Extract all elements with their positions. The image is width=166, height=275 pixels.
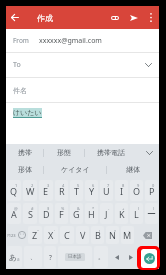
staticText: Z	[32, 229, 38, 241]
button[interactable]: I	[115, 180, 128, 201]
staticText: #	[31, 206, 34, 211]
button[interactable]: Y	[85, 180, 98, 201]
button[interactable]: E	[39, 180, 53, 201]
staticText: $	[47, 206, 50, 211]
button[interactable]: 携帯電話	[85, 144, 137, 161]
button[interactable]: 携帯	[6, 144, 43, 161]
button[interactable]: K	[115, 203, 128, 224]
staticText: From	[13, 36, 29, 45]
button[interactable]: B	[91, 226, 104, 244]
button[interactable]: ケイタイ	[44, 161, 106, 178]
staticText: xxxxxx@gmail.com	[39, 36, 102, 46]
staticText: P	[149, 185, 155, 197]
staticText: Y	[89, 185, 95, 197]
staticText: ?	[49, 253, 52, 262]
staticText: 携帯	[18, 148, 32, 157]
button[interactable]: 。	[94, 246, 108, 268]
staticText: 6	[92, 183, 95, 188]
button[interactable]: Cursor right	[125, 246, 137, 268]
staticText: ー	[147, 208, 156, 219]
staticText: 5	[77, 183, 80, 188]
button[interactable]: Z	[28, 226, 42, 244]
staticText: 1	[15, 183, 18, 188]
button[interactable]: W	[23, 180, 37, 201]
button[interactable]: ー	[145, 203, 158, 224]
button[interactable]: けいたい	[6, 103, 159, 125]
button[interactable]: X	[44, 226, 58, 244]
button[interactable]: P	[145, 180, 158, 201]
button[interactable]: Emoji	[18, 226, 26, 244]
button[interactable]: 件名	[6, 78, 159, 102]
staticText: -	[108, 206, 110, 211]
staticText: W	[26, 185, 35, 197]
staticText: 8	[122, 183, 125, 188]
staticText: T	[74, 185, 80, 197]
staticText: D	[43, 208, 50, 220]
staticText: ケイタイ	[61, 165, 90, 174]
staticText: U	[103, 185, 110, 197]
button[interactable]: T	[70, 180, 83, 201]
button[interactable]: 日本語	[58, 246, 92, 268]
staticText: けいたい	[13, 108, 42, 117]
button[interactable]: 形態	[44, 144, 84, 161]
button[interactable]: 形体	[6, 161, 43, 178]
button[interactable]: M	[121, 226, 134, 244]
button[interactable]: Attach file	[106, 6, 124, 29]
staticText: 9	[137, 183, 140, 188]
staticText: ~	[128, 229, 131, 234]
button[interactable]: N	[106, 226, 119, 244]
button[interactable]: Back	[6, 6, 24, 29]
button[interactable]: 継体	[107, 161, 159, 178]
button[interactable]: H	[85, 203, 98, 224]
staticText: 4	[62, 183, 65, 188]
staticText: 7	[107, 183, 110, 188]
button[interactable]: ?	[44, 246, 56, 268]
button[interactable]: S	[23, 203, 37, 224]
button[interactable]: Send	[124, 6, 143, 29]
staticText: (	[138, 206, 140, 211]
staticText: @	[14, 206, 18, 211]
staticText: G	[73, 208, 80, 220]
staticText: 。	[98, 253, 105, 261]
staticText: R	[59, 185, 65, 197]
staticText: O	[133, 185, 141, 197]
button[interactable]: More suggestions	[139, 144, 159, 161]
staticText: a	[17, 256, 20, 262]
button[interactable]: ?123	[7, 226, 16, 244]
staticText: 、	[30, 253, 37, 261]
button[interactable]: To	[6, 53, 159, 77]
button[interactable]: F	[55, 203, 68, 224]
staticText: C	[64, 229, 70, 241]
staticText: To	[13, 60, 21, 70]
button[interactable]: J	[100, 203, 113, 224]
staticText: J	[105, 208, 108, 220]
button[interactable]: L	[130, 203, 143, 224]
staticText: H	[88, 208, 95, 220]
staticText: ?123	[7, 233, 16, 238]
button[interactable]: Q	[7, 180, 21, 201]
staticText: N	[109, 229, 116, 241]
button[interactable]: U	[100, 180, 113, 201]
button[interactable]: あ	[7, 246, 22, 268]
staticText: I	[120, 185, 124, 197]
staticText: )	[153, 206, 155, 211]
button[interactable]: More options	[143, 6, 159, 29]
button[interactable]: D	[39, 203, 53, 224]
staticText: 携帯電話	[97, 148, 125, 157]
button[interactable]: 、	[24, 246, 42, 268]
staticText: E	[43, 185, 49, 197]
staticText: +	[122, 206, 125, 211]
button[interactable]: G	[70, 203, 83, 224]
staticText: 作成	[37, 13, 53, 23]
button[interactable]: Enter	[137, 246, 160, 270]
button[interactable]: Backspace	[136, 226, 158, 244]
button[interactable]: A	[7, 203, 21, 224]
staticText: 件名	[13, 86, 27, 95]
button[interactable]: C	[60, 226, 74, 244]
staticText: 3	[47, 183, 50, 188]
button[interactable]: R	[55, 180, 68, 201]
button[interactable]: Cursor left	[110, 246, 123, 268]
staticText: A	[11, 208, 17, 220]
button[interactable]: O	[130, 180, 143, 201]
button[interactable]: V	[76, 226, 89, 244]
